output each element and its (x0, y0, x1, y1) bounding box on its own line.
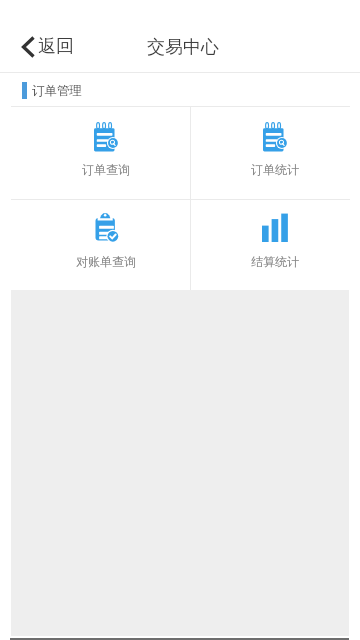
staticText: 订单管理 (32, 83, 82, 99)
button[interactable]: 订单查询 (0, 107, 190, 199)
staticText: 结算统计 (215, 254, 335, 269)
staticText: 对账单查询 (46, 254, 166, 269)
button[interactable]: 结算统计 (190, 199, 360, 290)
staticText: 交易中心 (147, 36, 219, 59)
button[interactable]: 订单统计 (190, 107, 360, 199)
staticText: 订单查询 (46, 162, 166, 177)
button[interactable]: 返回 (15, 29, 81, 64)
staticText: 订单统计 (215, 162, 335, 177)
staticText: 返回 (38, 35, 74, 58)
button[interactable]: 对账单查询 (0, 199, 190, 290)
